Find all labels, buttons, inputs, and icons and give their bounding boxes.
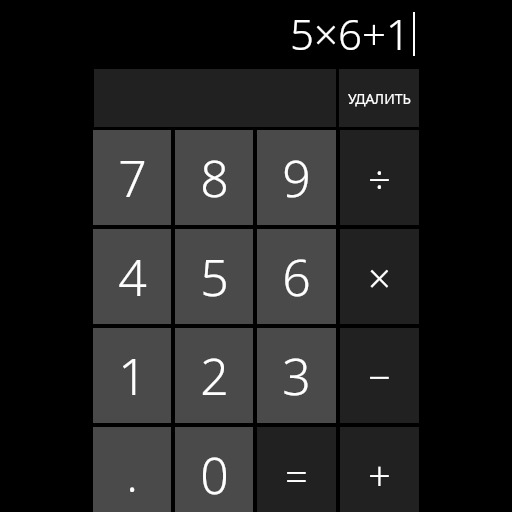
button[interactable]: 0 (175, 427, 253, 512)
staticText: 4 (118, 243, 147, 311)
staticText: 3 (282, 342, 311, 410)
button[interactable]: 3 (257, 328, 336, 423)
button[interactable]: 1 (93, 328, 171, 423)
button[interactable]: Multiply (340, 229, 419, 324)
staticText: . (126, 443, 138, 506)
staticText: 7 (118, 144, 147, 212)
button[interactable]: Divide (340, 130, 419, 225)
button[interactable]: 7 (93, 130, 171, 225)
button[interactable]: 8 (175, 130, 253, 225)
staticText: − (368, 349, 391, 403)
staticText: 1 (118, 342, 147, 410)
button[interactable]: Add (340, 427, 419, 512)
button[interactable]: 9 (257, 130, 336, 225)
staticText: ÷ (368, 151, 391, 205)
button[interactable]: 5 (175, 229, 253, 324)
staticText: 0 (200, 441, 229, 509)
staticText: УДАЛИТЬ (348, 89, 411, 108)
staticText: 8 (200, 144, 229, 212)
button[interactable]: 6 (257, 229, 336, 324)
staticText: 9 (282, 144, 311, 212)
button[interactable]: Decimal point (93, 427, 171, 512)
staticText: × (368, 250, 391, 304)
button[interactable]: 4 (93, 229, 171, 324)
staticText: 5×6+1 (290, 5, 410, 62)
staticText: = (285, 448, 308, 502)
button[interactable]: Equals (257, 427, 336, 512)
button[interactable]: УДАЛИТЬ (339, 69, 419, 127)
staticText: + (368, 448, 391, 502)
staticText: 2 (200, 342, 229, 410)
staticText: 6 (282, 243, 311, 311)
button[interactable]: Subtract (340, 328, 419, 423)
button[interactable]: 2 (175, 328, 253, 423)
button[interactable]: 5×6+1 (0, 0, 512, 66)
staticText: 5 (200, 243, 229, 311)
